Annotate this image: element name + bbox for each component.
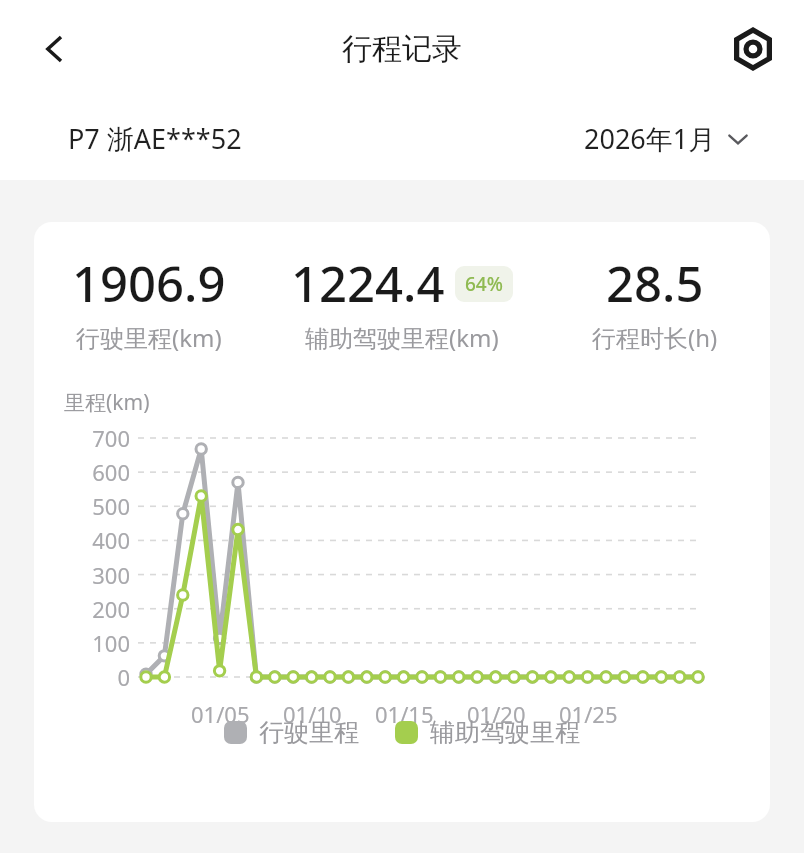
staticText: 300: [92, 560, 130, 590]
button[interactable]: Settings: [724, 20, 782, 78]
staticText: 2026年1月: [584, 120, 716, 157]
staticText: 行程记录: [342, 30, 462, 68]
button[interactable]: 2026年1月: [584, 120, 750, 157]
staticText: 64%: [465, 271, 503, 297]
staticText: 100: [92, 628, 130, 658]
staticText: 辅助驾驶里程: [430, 717, 580, 748]
button[interactable]: Back: [26, 20, 84, 78]
staticText: 28.5: [606, 250, 704, 317]
staticText: 1906.9: [72, 250, 226, 317]
staticText: 行驶里程(km): [76, 321, 222, 354]
button[interactable]: 辅助驾驶里程: [395, 717, 580, 748]
staticText: 01/05: [191, 699, 250, 729]
staticText: 600: [92, 457, 130, 487]
button[interactable]: 行驶里程: [224, 717, 359, 748]
staticText: 0: [117, 662, 130, 692]
staticText: 01/25: [559, 699, 618, 729]
staticText: 200: [92, 594, 130, 624]
staticText: 700: [92, 423, 130, 453]
staticText: 行程时长(h): [592, 321, 718, 354]
staticText: 1224.4: [291, 250, 445, 317]
staticText: 500: [92, 491, 130, 521]
staticText: 行驶里程: [259, 717, 359, 748]
staticText: 辅助驾驶里程(km): [305, 321, 499, 354]
staticText: 01/10: [283, 699, 342, 729]
staticText: 400: [92, 525, 130, 555]
staticText: P7 浙AE***52: [68, 120, 242, 157]
staticText: 01/20: [467, 699, 526, 729]
staticText: 里程(km): [64, 388, 150, 417]
staticText: 01/15: [375, 699, 434, 729]
